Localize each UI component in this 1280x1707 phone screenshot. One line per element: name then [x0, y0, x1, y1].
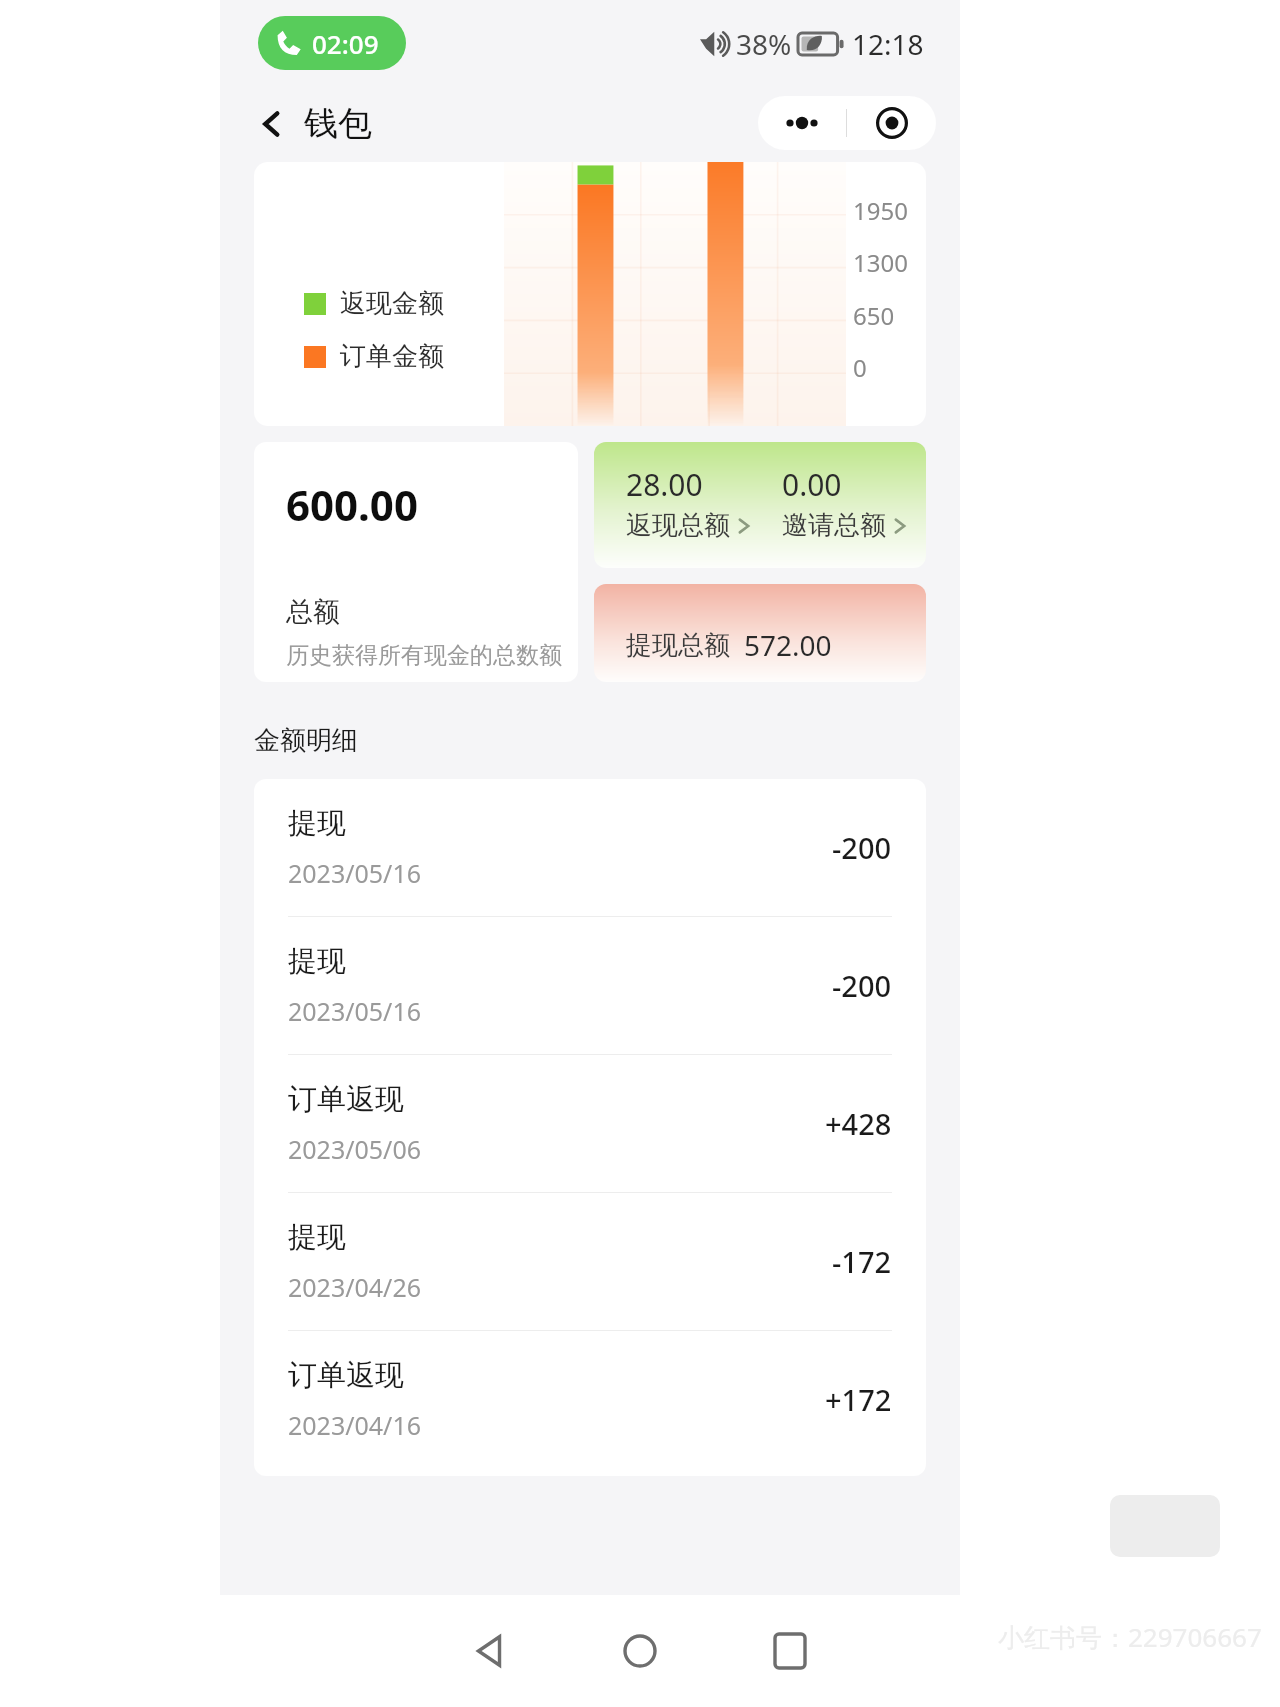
staticText: 订单返现	[288, 1357, 404, 1394]
staticText: 0.00	[782, 464, 842, 505]
staticText: 钱包	[304, 102, 372, 145]
staticText: 38%	[736, 25, 792, 63]
staticText: -200	[832, 966, 892, 1005]
button[interactable]: Ongoing call 02:09	[258, 16, 406, 70]
staticText: 邀请总额	[782, 509, 886, 542]
staticText: 2023/04/26	[288, 1270, 422, 1304]
staticText: 1950	[853, 194, 908, 227]
button[interactable]: Close	[847, 96, 936, 150]
button[interactable]: Recent apps	[715, 1606, 865, 1696]
staticText: 1300	[853, 246, 908, 279]
button[interactable]: 提现	[254, 779, 926, 916]
button[interactable]: More	[758, 96, 846, 150]
staticText: 小红书号：229706667	[998, 1619, 1262, 1655]
staticText: +172	[825, 1380, 892, 1419]
staticText: 金额明细	[254, 724, 358, 757]
staticText: -172	[832, 1242, 892, 1281]
button[interactable]: 28.00	[594, 442, 760, 568]
button[interactable]: 提现总额	[594, 584, 926, 682]
staticText: 572.00	[744, 626, 832, 664]
staticText: 返现总额	[626, 509, 730, 542]
staticText: 0	[853, 351, 867, 384]
staticText: 提现总额	[626, 629, 730, 662]
other: Back	[254, 106, 290, 142]
staticText: 提现	[288, 805, 346, 842]
button[interactable]: Back	[415, 1606, 565, 1696]
staticText: 2023/04/16	[288, 1408, 422, 1442]
button[interactable]: 订单返现	[254, 1055, 926, 1192]
staticText: 返现金额	[340, 287, 444, 320]
staticText: 02:09	[312, 26, 379, 61]
staticText: +428	[825, 1104, 892, 1143]
staticText: 600.00	[286, 476, 418, 533]
staticText: 订单金额	[340, 340, 444, 373]
staticText: 总额	[286, 595, 340, 629]
staticText: 提现	[288, 1219, 346, 1256]
staticText: 历史获得所有现金的总数额	[286, 641, 562, 670]
staticText: 12:18	[852, 25, 924, 63]
staticText: 650	[853, 299, 895, 332]
button[interactable]: Back	[246, 96, 380, 151]
staticText: 订单返现	[288, 1081, 404, 1118]
staticText: 2023/05/16	[288, 856, 422, 890]
staticText: 2023/05/16	[288, 994, 422, 1028]
button[interactable]: Home	[565, 1606, 715, 1696]
button[interactable]: 0.00	[760, 442, 926, 568]
staticText: 28.00	[626, 464, 703, 505]
staticText: -200	[832, 828, 892, 867]
button[interactable]: 订单返现	[254, 1331, 926, 1468]
button[interactable]: 600.00	[254, 442, 578, 682]
staticText: 2023/05/06	[288, 1132, 422, 1166]
button[interactable]: 提现	[254, 1193, 926, 1330]
button[interactable]: 提现	[254, 917, 926, 1054]
staticText: 提现	[288, 943, 346, 980]
